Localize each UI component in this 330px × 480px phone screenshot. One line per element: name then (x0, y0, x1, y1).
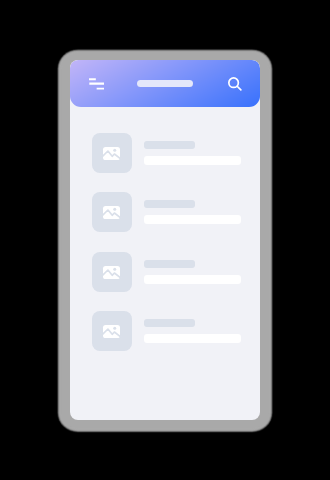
button[interactable]: Search (221, 71, 247, 97)
button[interactable] (70, 123, 260, 182)
button[interactable] (70, 242, 260, 301)
button[interactable] (137, 80, 193, 87)
button[interactable]: Menu (83, 71, 109, 97)
button[interactable] (70, 182, 260, 241)
button[interactable] (70, 301, 260, 360)
